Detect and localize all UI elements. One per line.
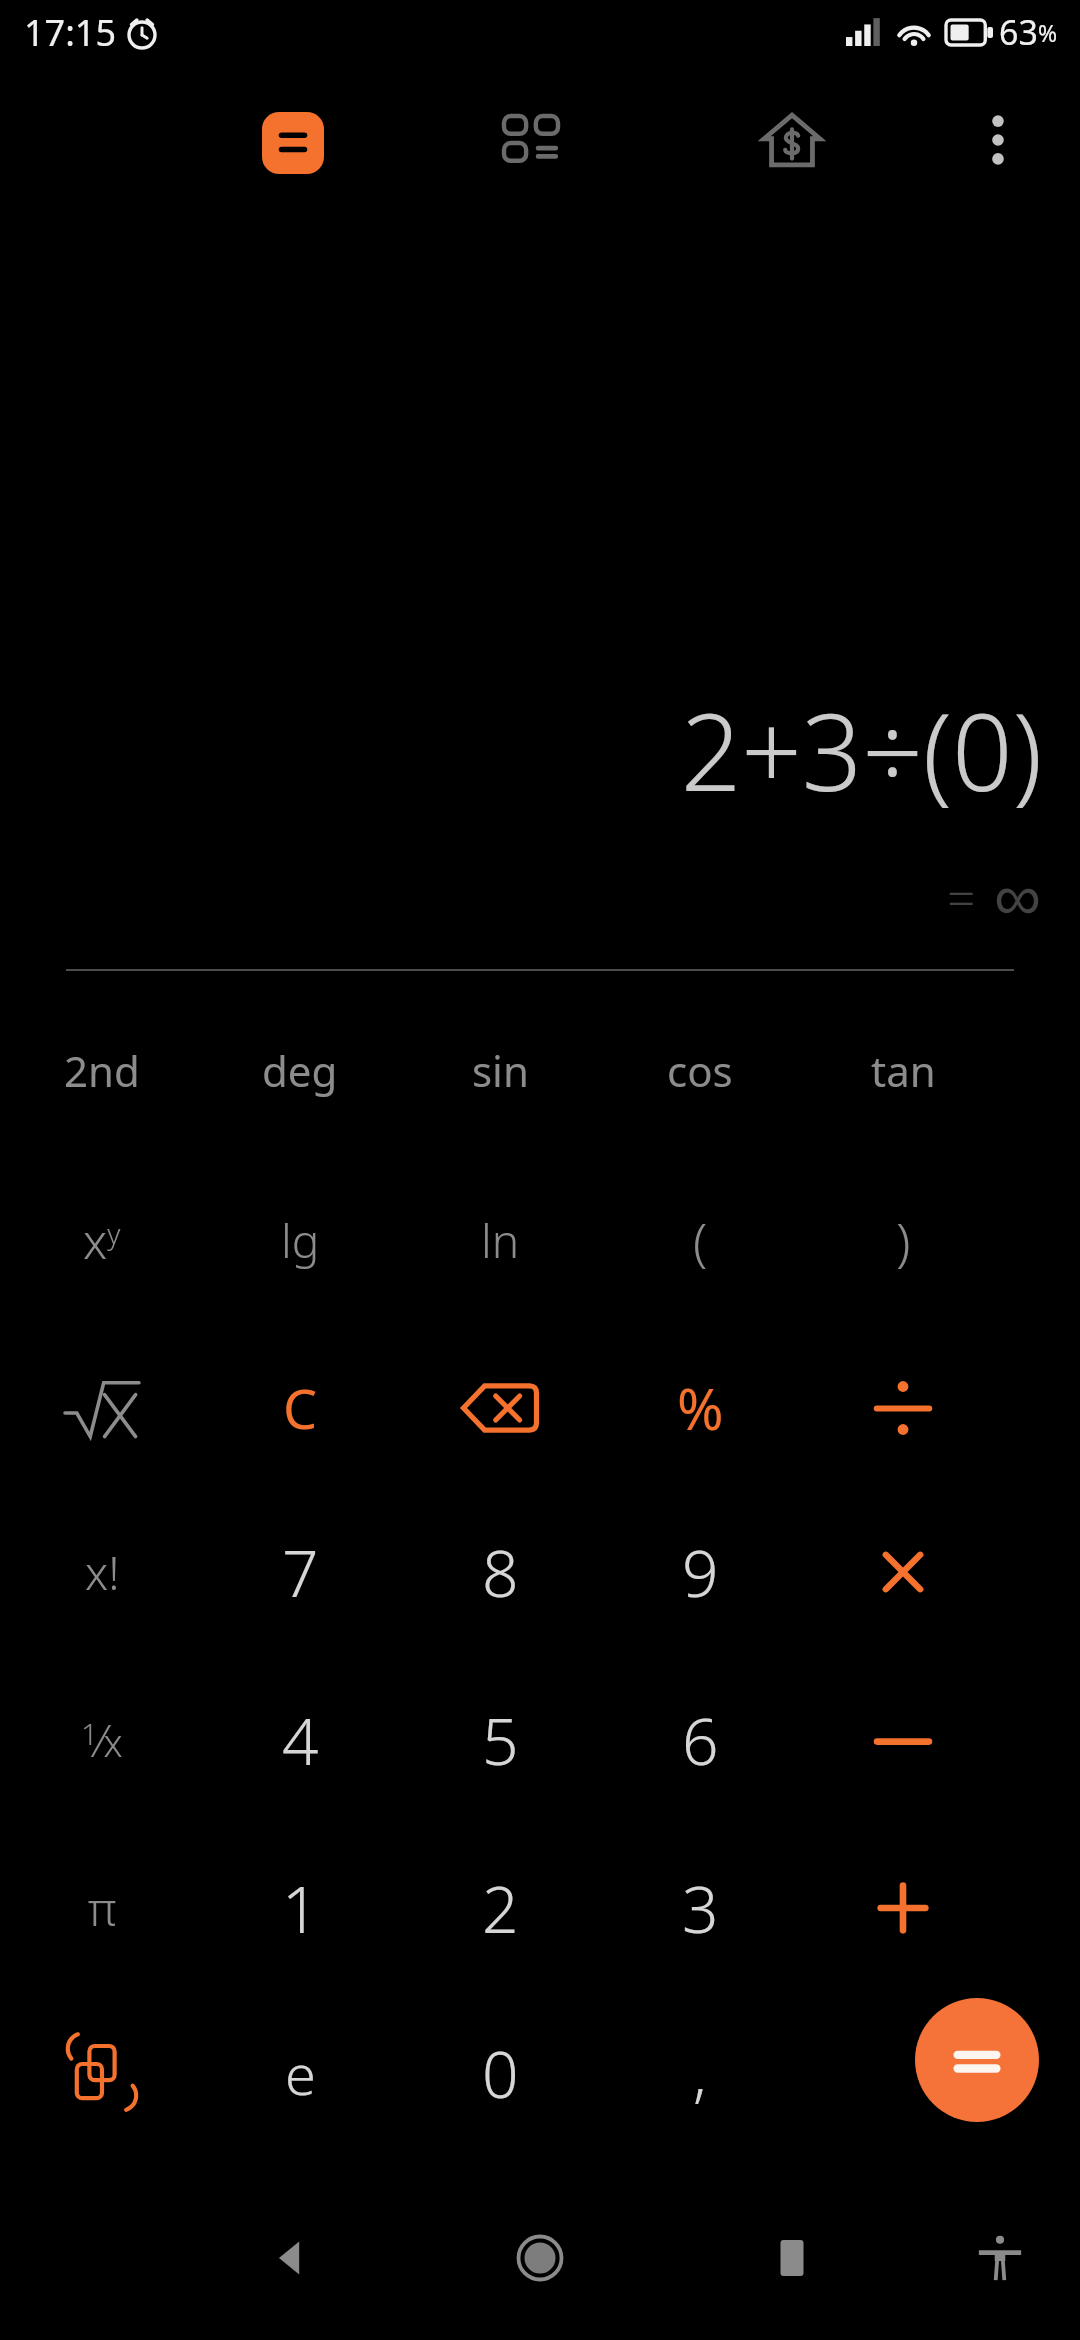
button[interactable]: 2 (402, 1825, 598, 1991)
button[interactable]: Backspace (402, 1325, 598, 1491)
staticText: ) (896, 1205, 911, 1276)
staticText: , (693, 2032, 707, 2114)
button[interactable]: 5 (402, 1657, 598, 1823)
button[interactable]: e (202, 1990, 398, 2156)
button[interactable]: Switch keypad (4, 1990, 200, 2156)
button[interactable]: 8 (402, 1489, 598, 1655)
button[interactable]: π (4, 1825, 200, 1991)
staticText: 3 (682, 1865, 719, 1952)
button[interactable]: % (602, 1325, 798, 1491)
button[interactable]: sin (402, 987, 598, 1153)
button[interactable]: C (202, 1325, 398, 1491)
button[interactable]: Recent apps (748, 2214, 836, 2302)
button[interactable]: Divide (805, 1325, 1001, 1491)
button[interactable]: More options (962, 104, 1034, 176)
button[interactable]: cos (602, 987, 798, 1153)
staticText: 2 (482, 1865, 519, 1952)
button[interactable]: x! (4, 1489, 200, 1655)
button[interactable]: , (602, 1990, 798, 2156)
staticText: sin (472, 1042, 529, 1099)
staticText: xy (83, 1208, 121, 1273)
button[interactable]: Multiply (805, 1489, 1001, 1655)
staticText: 63 (999, 9, 1038, 55)
button[interactable]: 4 (202, 1657, 398, 1823)
staticText: 17:15 (24, 8, 117, 57)
button[interactable]: 9 (602, 1489, 798, 1655)
button[interactable]: Calculator (262, 112, 324, 174)
button[interactable]: 6 (602, 1657, 798, 1823)
staticText: 2nd (64, 1042, 140, 1099)
button[interactable]: 7 (202, 1489, 398, 1655)
staticText: π (88, 1877, 117, 1940)
button[interactable]: 0 (402, 1990, 598, 2156)
staticText: 0 (482, 2030, 519, 2117)
staticText: lg (281, 1209, 320, 1272)
button[interactable]: Equals (915, 1998, 1039, 2122)
button[interactable]: ) (805, 1157, 1001, 1323)
staticText: % (1038, 17, 1058, 48)
staticText: 6 (682, 1697, 719, 1784)
button[interactable]: 2nd (4, 987, 200, 1153)
staticText: x! (85, 1541, 120, 1604)
staticText: ( (693, 1205, 708, 1276)
button[interactable]: ln (402, 1157, 598, 1323)
staticText: cos (667, 1042, 733, 1099)
button[interactable]: 1 (202, 1825, 398, 1991)
button[interactable]: Back (246, 2214, 334, 2302)
button[interactable]: Accessibility (954, 2212, 1046, 2304)
staticText: C (283, 1371, 318, 1445)
button[interactable]: Loan calculator (756, 104, 828, 176)
button[interactable]: ( (602, 1157, 798, 1323)
staticText: 7 (282, 1529, 319, 1616)
staticText: 8 (482, 1529, 519, 1616)
staticText: 2+3÷(0) (0, 678, 1042, 822)
button[interactable]: deg (202, 987, 398, 1153)
button[interactable]: Home (496, 2214, 584, 2302)
button[interactable]: Square root (4, 1325, 200, 1491)
staticText: 4 (282, 1697, 319, 1784)
staticText: 1 (282, 1865, 319, 1952)
button[interactable]: xy (4, 1157, 200, 1323)
staticText: 5 (482, 1697, 519, 1784)
staticText: ∞ (994, 860, 1042, 934)
button[interactable]: 1⁄x (4, 1657, 200, 1823)
staticText: % (677, 1370, 724, 1446)
staticText: 9 (682, 1529, 719, 1616)
staticText: e (285, 2035, 316, 2111)
staticText: = (947, 863, 976, 931)
button[interactable]: Unit converter (498, 110, 564, 176)
staticText: ln (481, 1209, 520, 1272)
staticText: tan (871, 1042, 936, 1099)
staticText: deg (262, 1042, 338, 1099)
staticText: 1⁄x (81, 1710, 123, 1770)
button[interactable]: Subtract (805, 1657, 1001, 1823)
button[interactable]: 3 (602, 1825, 798, 1991)
button[interactable]: tan (805, 987, 1001, 1153)
button[interactable]: lg (202, 1157, 398, 1323)
button[interactable]: Add (805, 1825, 1001, 1991)
